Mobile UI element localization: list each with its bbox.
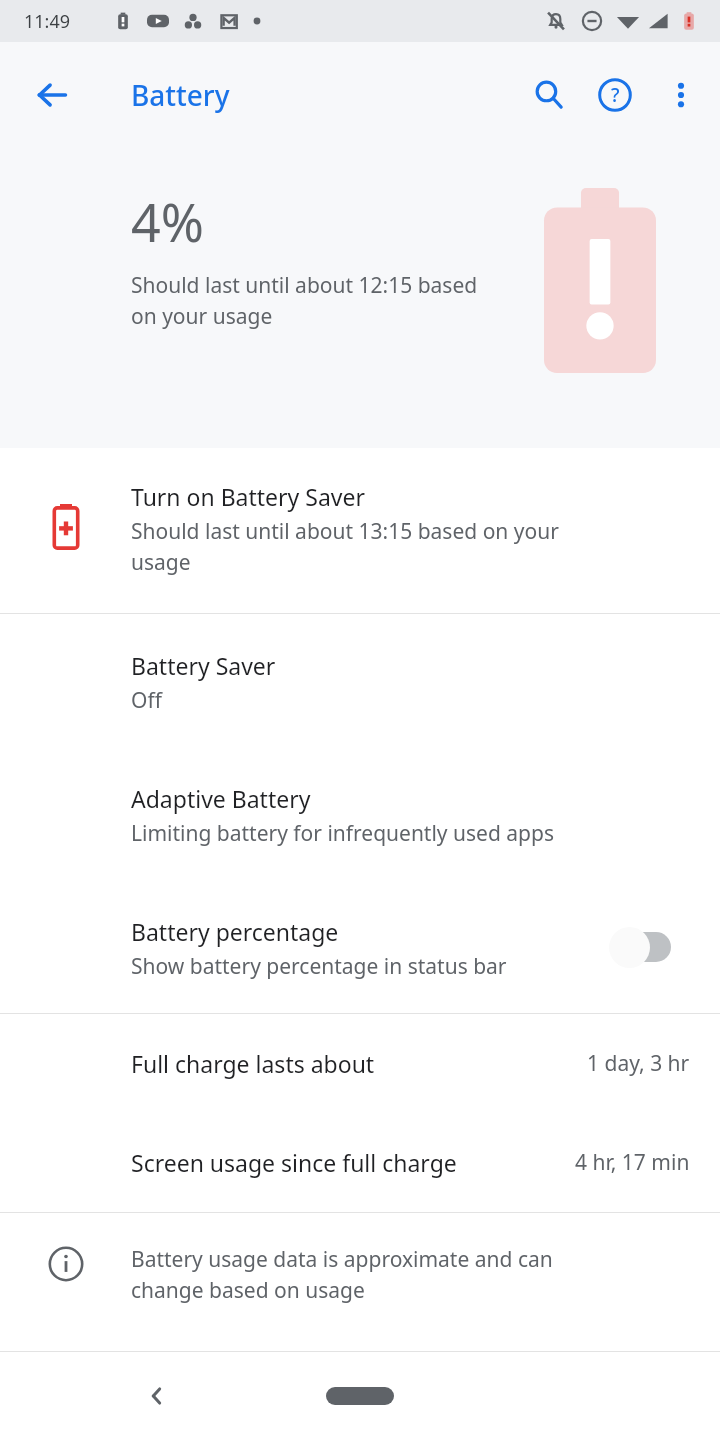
button[interactable]: Turn on Battery Saver [0, 448, 720, 613]
staticText: Adaptive Battery [131, 783, 311, 814]
staticText: Battery usage data is approximate and ca… [131, 1245, 553, 1304]
button[interactable]: Adaptive Battery [0, 747, 720, 880]
button[interactable]: Search [516, 62, 582, 128]
button[interactable]: More options [648, 62, 714, 128]
staticText: Show battery percentage in status bar [131, 952, 507, 981]
button[interactable]: Help [582, 62, 648, 128]
button[interactable]: Battery Saver [0, 614, 720, 747]
button[interactable]: Back [20, 63, 84, 127]
staticText: Should last until about 12:15 based on y… [131, 271, 478, 330]
staticText: Battery Saver [131, 650, 276, 681]
staticText: Screen usage since full charge [131, 1147, 457, 1178]
staticText: Should last until about 13:15 based on y… [131, 517, 559, 576]
staticText: 11:49 [24, 9, 71, 34]
staticText: Turn on Battery Saver [131, 481, 365, 512]
staticText: Limiting battery for infrequently used a… [131, 819, 554, 848]
button[interactable]: Back [128, 1367, 186, 1425]
staticText: ? [611, 82, 620, 108]
button[interactable]: Full charge lasts about [0, 1014, 720, 1113]
staticText: 1 day, 3 hr [587, 1049, 690, 1078]
staticText: 4 hr, 17 min [575, 1148, 690, 1177]
button[interactable]: Home [326, 1387, 394, 1405]
staticText: Off [131, 686, 162, 715]
staticText: Battery [131, 76, 230, 114]
staticText: 4% [131, 186, 204, 257]
staticText: Full charge lasts about [131, 1048, 375, 1079]
button[interactable]: Screen usage since full charge [0, 1113, 720, 1212]
staticText: Battery percentage [131, 916, 339, 947]
button[interactable]: Battery percentage [0, 880, 720, 1013]
